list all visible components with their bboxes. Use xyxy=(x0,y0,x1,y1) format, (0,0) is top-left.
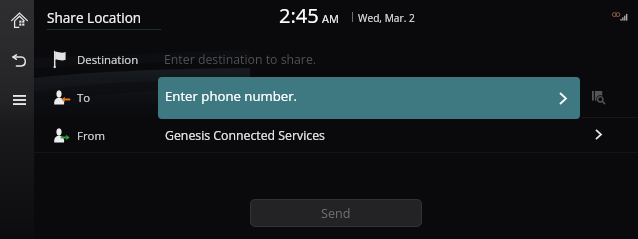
button[interactable] xyxy=(34,119,638,157)
staticText: AM xyxy=(322,11,339,26)
staticText: Enter phone number. xyxy=(165,87,298,105)
button[interactable]: Send xyxy=(250,199,422,227)
staticText: Wed, Mar. 2 xyxy=(358,11,415,25)
staticText: Share Location xyxy=(47,8,142,27)
button[interactable] xyxy=(34,40,638,78)
button[interactable]: Back xyxy=(0,40,34,80)
staticText: Send xyxy=(321,205,351,222)
staticText: 2:45 xyxy=(279,2,319,29)
button[interactable]: Home xyxy=(0,0,34,40)
staticText: Destination xyxy=(77,52,139,68)
button[interactable] xyxy=(158,77,580,119)
button[interactable]: Search contacts xyxy=(582,78,638,117)
staticText: From xyxy=(77,128,105,144)
button[interactable] xyxy=(40,0,170,32)
staticText: Enter destination to share. xyxy=(164,51,317,68)
staticText: Genesis Connected Services xyxy=(165,127,325,144)
button[interactable]: Menu xyxy=(0,80,34,120)
staticText: To xyxy=(77,90,91,106)
button[interactable]: Connectivity status xyxy=(606,6,632,26)
